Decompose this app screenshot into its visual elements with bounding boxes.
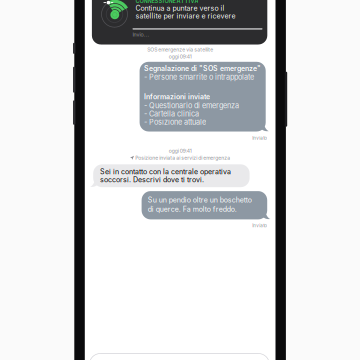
staticText: Invio... — [132, 31, 149, 38]
staticText: oggi 09:41 — [169, 148, 192, 154]
staticText: Segnalazione di "SOS emergenze" — [144, 64, 261, 73]
staticText: Continua a puntare verso il — [135, 4, 224, 12]
staticText: - Questionario di emergenza — [144, 101, 239, 110]
staticText: Posizione inviata ai servizi di emergenz… — [135, 155, 230, 161]
staticText: oggi 09:41 — [169, 53, 192, 60]
staticText: soccorsi. Descrivi dove ti trovi. — [100, 175, 204, 184]
staticText: Informazioni inviate — [144, 93, 210, 101]
staticText: satellite per inviare e ricevere — [135, 11, 235, 20]
staticText: Inviato — [252, 135, 267, 141]
staticText: - Cartella clinica — [144, 109, 199, 118]
staticText: Su un pendio oltre un boschetto — [148, 195, 252, 204]
staticText: CONNESSIONE ATTIVA — [135, 0, 198, 4]
staticText: - Persone smarrite o intrappolate — [144, 72, 254, 81]
staticText: Inviato — [252, 223, 267, 228]
staticText: di querce. Fa molto freddo. — [148, 205, 237, 213]
staticText: Sei in contatto con la centrale operativ… — [100, 167, 231, 176]
staticText: SOS emergenze via satellite — [147, 47, 213, 53]
staticText: - Posizione attuale — [144, 118, 206, 126]
